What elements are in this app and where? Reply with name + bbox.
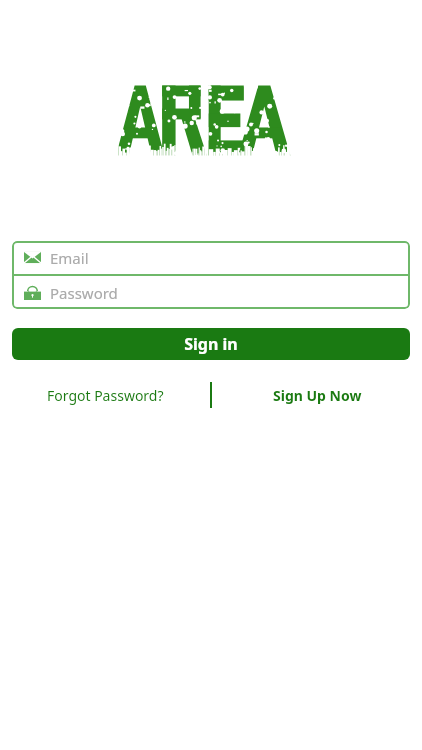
staticText: Email — [50, 248, 89, 268]
staticText: Sign in — [184, 333, 238, 355]
other: Email — [24, 250, 41, 265]
button[interactable]: Password — [12, 276, 410, 309]
staticText: Sign Up Now — [273, 386, 362, 405]
button[interactable]: Sign Up Now — [212, 382, 422, 408]
button[interactable]: Sign in — [12, 328, 410, 360]
staticText: Forgot Password? — [47, 386, 164, 405]
button[interactable]: Forgot Password? — [0, 382, 210, 408]
button[interactable]: Email — [12, 241, 410, 274]
staticText: Password — [50, 283, 118, 303]
other: Password — [24, 285, 41, 300]
